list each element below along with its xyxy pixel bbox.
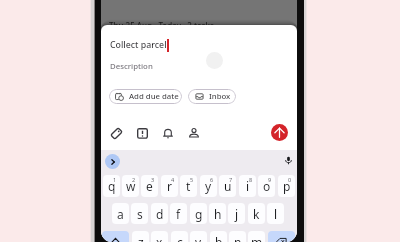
button[interactable]: q bbox=[103, 175, 120, 197]
button[interactable]: x bbox=[151, 231, 168, 242]
staticText: Inbox bbox=[209, 91, 231, 102]
button[interactable]: u bbox=[219, 175, 236, 197]
staticText: Add due date bbox=[129, 91, 179, 102]
staticText: a bbox=[117, 206, 124, 222]
staticText: 4 bbox=[171, 176, 175, 183]
button[interactable]: Shift bbox=[102, 231, 129, 242]
button[interactable]: i bbox=[239, 175, 256, 197]
button[interactable]: s bbox=[131, 203, 148, 224]
staticText: r bbox=[167, 178, 172, 194]
staticText: t bbox=[186, 178, 191, 194]
button[interactable]: a bbox=[112, 203, 129, 224]
staticText: m bbox=[251, 234, 263, 242]
button[interactable]: j bbox=[228, 203, 245, 224]
staticText: 0 bbox=[288, 176, 292, 183]
button[interactable]: p bbox=[278, 175, 295, 197]
staticText: c bbox=[177, 234, 183, 242]
staticText: 8 bbox=[249, 176, 253, 183]
button[interactable]: w bbox=[122, 175, 139, 197]
button[interactable]: Voice input bbox=[282, 154, 294, 166]
staticText: q bbox=[108, 178, 116, 194]
button[interactable]: c bbox=[171, 231, 188, 242]
button[interactable]: n bbox=[229, 231, 246, 242]
button[interactable]: Expand suggestions bbox=[105, 154, 120, 169]
staticText: l bbox=[274, 206, 278, 222]
staticText: w bbox=[126, 178, 136, 194]
staticText: b bbox=[215, 234, 223, 242]
staticText: s bbox=[137, 206, 143, 222]
button[interactable]: Send bbox=[271, 124, 288, 141]
staticText: j bbox=[235, 206, 239, 222]
button[interactable]: b bbox=[210, 231, 227, 242]
staticText: 6 bbox=[210, 176, 214, 183]
button[interactable]: Inbox bbox=[188, 89, 236, 104]
staticText: u bbox=[224, 178, 232, 194]
staticText: 5 bbox=[190, 176, 194, 183]
staticText: v bbox=[195, 234, 202, 242]
button[interactable]: t bbox=[180, 175, 197, 197]
button[interactable]: l bbox=[267, 203, 284, 224]
staticText: e bbox=[146, 178, 153, 194]
staticText: Description bbox=[110, 61, 153, 72]
staticText: 9 bbox=[268, 176, 272, 183]
button[interactable]: Assign bbox=[187, 126, 201, 140]
staticText: n bbox=[234, 234, 242, 242]
button[interactable]: z bbox=[132, 231, 149, 242]
button[interactable]: Label bbox=[109, 126, 123, 140]
staticText: f bbox=[176, 206, 181, 222]
staticText: k bbox=[253, 206, 260, 222]
button[interactable]: Add due date bbox=[109, 89, 182, 104]
button[interactable]: o bbox=[258, 175, 275, 197]
button[interactable]: y bbox=[200, 175, 217, 197]
staticText: 2 bbox=[132, 176, 136, 183]
staticText: y bbox=[205, 178, 212, 194]
staticText: z bbox=[138, 234, 144, 242]
button[interactable]: Reminder bbox=[161, 126, 175, 140]
button[interactable]: m bbox=[248, 231, 265, 242]
staticText: 3 bbox=[151, 176, 155, 183]
staticText: d bbox=[156, 206, 164, 222]
button[interactable]: e bbox=[141, 175, 158, 197]
button[interactable]: f bbox=[170, 203, 187, 224]
staticText: 1 bbox=[113, 176, 117, 183]
button[interactable]: v bbox=[190, 231, 207, 242]
staticText: x bbox=[156, 234, 163, 242]
button[interactable]: Priority bbox=[135, 126, 149, 140]
button[interactable]: Backspace bbox=[268, 231, 295, 242]
button[interactable]: Avatar bbox=[206, 52, 223, 69]
staticText: p bbox=[283, 178, 291, 194]
staticText: 7 bbox=[229, 176, 233, 183]
button[interactable]: d bbox=[151, 203, 168, 224]
staticText: h bbox=[214, 206, 222, 222]
staticText: Thu 25 Aug · Today · 2 tasks bbox=[109, 20, 214, 31]
button[interactable]: k bbox=[248, 203, 265, 224]
staticText: Collect parcel bbox=[110, 39, 167, 51]
staticText: g bbox=[195, 206, 203, 222]
button[interactable]: r bbox=[161, 175, 178, 197]
staticText: o bbox=[263, 178, 271, 194]
staticText: i bbox=[246, 178, 250, 194]
button[interactable]: g bbox=[190, 203, 207, 224]
button[interactable]: h bbox=[209, 203, 226, 224]
